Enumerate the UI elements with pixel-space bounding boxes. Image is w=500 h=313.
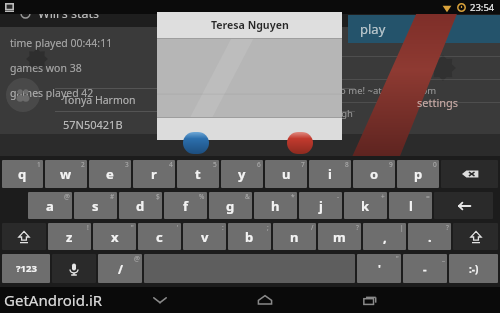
- button[interactable]: Friends: [6, 78, 40, 112]
- button[interactable]: o: [353, 160, 395, 188]
- staticText: 7: [301, 160, 305, 169]
- button[interactable]: Accept: [183, 132, 209, 154]
- button[interactable]: p: [397, 160, 439, 188]
- staticText: games won 38: [10, 61, 82, 75]
- button[interactable]: :-): [449, 254, 498, 283]
- button[interactable]: j: [299, 192, 342, 219]
- staticText: ': [378, 261, 381, 276]
- staticText: +: [381, 192, 385, 201]
- button[interactable]: e: [89, 160, 131, 188]
- button[interactable]: a: [28, 192, 72, 219]
- staticText: v: [201, 228, 209, 246]
- staticText: -: [337, 192, 340, 201]
- staticText: .: [428, 228, 432, 246]
- button[interactable]: Settings: [408, 72, 468, 132]
- staticText: /: [118, 261, 123, 277]
- button[interactable]: -: [403, 254, 447, 283]
- staticText: 2: [81, 160, 85, 169]
- button[interactable]: Hide keyboard: [140, 287, 180, 313]
- button[interactable]: d: [119, 192, 162, 219]
- button[interactable]: w: [45, 160, 87, 188]
- staticText: :: [222, 223, 224, 232]
- button[interactable]: Recent apps: [350, 287, 390, 313]
- staticText: b: [245, 228, 254, 246]
- staticText: s: [92, 197, 99, 215]
- staticText: d: [136, 197, 145, 215]
- button[interactable]: Will's stats: [0, 0, 500, 27]
- staticText: i: [328, 165, 332, 183]
- staticText: #: [110, 192, 115, 201]
- staticText: Will's stats: [38, 5, 99, 22]
- staticText: time played 00:44:11: [10, 36, 113, 50]
- button[interactable]: z: [48, 223, 91, 250]
- button[interactable]: s: [74, 192, 117, 219]
- staticText: 8: [345, 160, 349, 169]
- staticText: g: [226, 197, 235, 215]
- button[interactable]: k: [344, 192, 387, 219]
- staticText: games played 42: [10, 86, 94, 100]
- button[interactable]: b: [228, 223, 271, 250]
- button[interactable]: i: [309, 160, 351, 188]
- button[interactable]: h: [254, 192, 297, 219]
- button[interactable]: ,: [363, 223, 406, 250]
- button[interactable]: u: [265, 160, 307, 188]
- button[interactable]: Voice input: [52, 254, 96, 283]
- staticText: y: [238, 165, 246, 183]
- staticText: k: [361, 197, 370, 215]
- button[interactable]: .: [408, 223, 451, 250]
- staticText: $: [156, 192, 160, 201]
- button[interactable]: ': [357, 254, 401, 283]
- button[interactable]: /: [98, 254, 142, 283]
- staticText: _: [442, 254, 445, 263]
- staticText: ?: [356, 223, 359, 232]
- staticText: |: [400, 223, 404, 232]
- staticText: l: [409, 197, 413, 215]
- button[interactable]: Shift: [2, 223, 46, 250]
- staticText: *: [291, 192, 295, 201]
- staticText: Tonya Harmon: [63, 93, 136, 107]
- button[interactable]: l: [389, 192, 432, 219]
- button[interactable]: Enter: [434, 192, 493, 219]
- button[interactable]: Home: [245, 287, 285, 313]
- staticText: @: [64, 192, 70, 201]
- staticText: =: [426, 192, 430, 201]
- staticText: j: [319, 197, 323, 215]
- button[interactable]: v: [183, 223, 226, 250]
- staticText: 4: [169, 160, 173, 169]
- button[interactable]: Decline: [287, 132, 313, 154]
- staticText: you? At least say hi to me! ~at game roo…: [250, 84, 437, 97]
- button[interactable]: play: [348, 15, 500, 43]
- button[interactable]: Backspace: [441, 160, 498, 188]
- staticText: 9: [389, 160, 393, 169]
- button[interactable]: c: [138, 223, 181, 250]
- staticText: ?123: [16, 262, 37, 275]
- staticText: %: [199, 192, 205, 201]
- staticText: x: [111, 228, 119, 246]
- staticText: h: [271, 197, 280, 215]
- button[interactable]: f: [164, 192, 207, 219]
- button[interactable]: Shift: [453, 223, 498, 250]
- staticText: c: [156, 228, 163, 246]
- button[interactable]: t: [177, 160, 219, 188]
- staticText: ": [131, 223, 134, 232]
- button[interactable]: q: [2, 160, 43, 188]
- staticText: @: [134, 254, 140, 263]
- button[interactable]: ?123: [2, 254, 50, 283]
- staticText: -: [423, 261, 427, 276]
- button[interactable]: x: [93, 223, 136, 250]
- staticText: ,: [383, 228, 387, 246]
- button[interactable]: m: [318, 223, 361, 250]
- button[interactable]: g: [209, 192, 252, 219]
- staticText: settings: [417, 95, 459, 110]
- staticText: 5: [213, 160, 217, 169]
- staticText: 23:54: [470, 1, 495, 14]
- button[interactable]: n: [273, 223, 316, 250]
- staticText: q: [18, 165, 27, 183]
- button[interactable]: y: [221, 160, 263, 188]
- staticText: ;: [267, 223, 269, 232]
- button[interactable]: r: [133, 160, 175, 188]
- staticText: a: [46, 197, 54, 215]
- staticText: &: [245, 192, 250, 201]
- staticText: f: [183, 197, 189, 215]
